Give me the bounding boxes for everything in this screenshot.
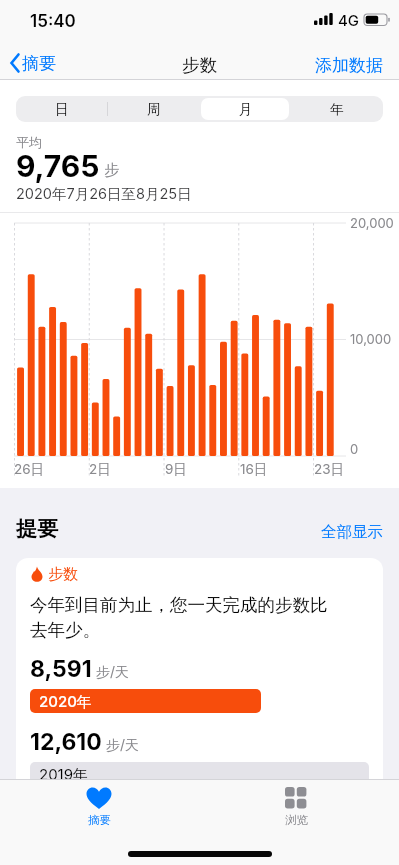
staticText: 10,000 (350, 331, 392, 347)
staticText: 步 (104, 161, 119, 180)
staticText: 提要 (16, 516, 58, 542)
staticText: 9日 (165, 461, 187, 478)
staticText: 8,591 (30, 655, 92, 683)
button[interactable]: 年 (291, 96, 383, 122)
staticText: 步/天 (106, 736, 140, 754)
staticText: 9,765 (16, 148, 100, 184)
staticText: 摘要 (88, 813, 111, 827)
staticText: 今年到目前为止，您一天完成的步数比 去年少。 (30, 594, 328, 642)
button[interactable]: 摘要 (8, 52, 56, 74)
staticText: 步数 (48, 565, 78, 584)
button[interactable]: 浏览 (254, 782, 338, 838)
staticText: 12,610 (30, 728, 102, 756)
staticText: 平均 (16, 134, 42, 150)
button[interactable]: 添加数据 (315, 55, 383, 76)
staticText: 摘要 (22, 53, 56, 74)
staticText: 26日 (14, 461, 45, 478)
button[interactable]: 月 (200, 96, 292, 122)
staticText: 2020年7月26日至8月25日 (16, 185, 192, 203)
staticText: 4G (338, 11, 360, 29)
button[interactable]: 全部显示 (321, 522, 383, 542)
staticText: 2019年 (39, 765, 89, 784)
staticText: 年 (330, 101, 344, 118)
staticText: 15:40 (30, 11, 76, 32)
staticText: 2日 (89, 461, 111, 478)
button[interactable]: 周 (108, 96, 200, 122)
button[interactable]: 摘要 (57, 782, 141, 838)
staticText: 周 (147, 101, 161, 118)
button[interactable] (16, 558, 383, 865)
staticText: 16日 (240, 461, 268, 478)
staticText: 0 (350, 441, 359, 457)
staticText: 23日 (314, 461, 345, 478)
staticText: 步数 (182, 54, 217, 76)
staticText: 月 (239, 101, 253, 118)
staticText: 浏览 (285, 813, 308, 827)
staticText: 2020年 (39, 692, 92, 711)
staticText: 日 (55, 101, 69, 118)
staticText: 20,000 (350, 215, 394, 231)
staticText: 步/天 (96, 663, 130, 681)
button[interactable]: 日 (16, 96, 108, 122)
